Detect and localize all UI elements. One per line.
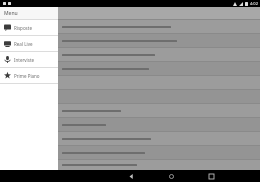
button[interactable]: Recent apps bbox=[200, 170, 222, 182]
button[interactable] bbox=[0, 76, 260, 90]
staticText: Real Live bbox=[14, 41, 33, 47]
staticText: Menu bbox=[4, 10, 18, 17]
button[interactable]: Interviste bbox=[0, 52, 58, 68]
button[interactable]: Risposte bbox=[0, 20, 58, 36]
button[interactable] bbox=[0, 20, 260, 34]
button[interactable] bbox=[0, 146, 260, 160]
button[interactable]: Prime Piano bbox=[0, 68, 58, 84]
button[interactable] bbox=[0, 118, 260, 132]
button[interactable]: Real Live bbox=[0, 36, 58, 52]
button[interactable]: Back bbox=[120, 170, 142, 182]
button[interactable] bbox=[0, 90, 260, 104]
button[interactable] bbox=[0, 62, 260, 76]
button[interactable] bbox=[0, 7, 260, 19]
button[interactable]: Home bbox=[160, 170, 182, 182]
staticText: Risposte bbox=[14, 25, 32, 31]
button[interactable] bbox=[0, 34, 260, 48]
button[interactable] bbox=[0, 132, 260, 146]
staticText: Interviste bbox=[14, 57, 35, 63]
button[interactable] bbox=[0, 160, 260, 170]
button[interactable] bbox=[0, 104, 260, 118]
button[interactable] bbox=[0, 48, 260, 62]
staticText: Prime Piano bbox=[14, 73, 40, 79]
staticText: 4:02 bbox=[250, 1, 258, 6]
